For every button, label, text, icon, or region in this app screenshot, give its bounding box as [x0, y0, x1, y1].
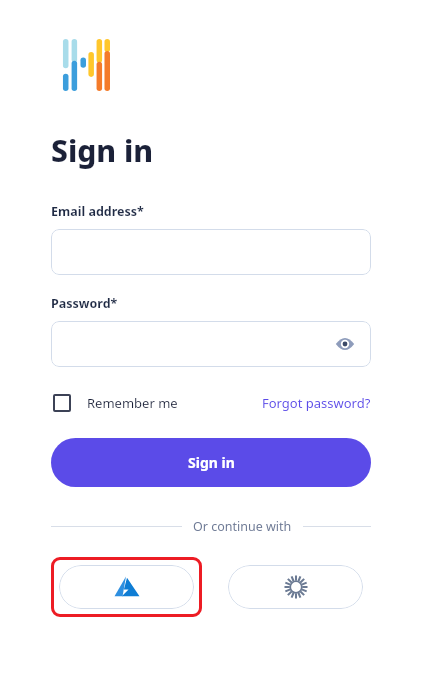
- staticText: Sign in: [188, 453, 235, 472]
- button[interactable]: Forgot password?: [262, 390, 371, 416]
- staticText: Forgot password?: [262, 394, 371, 412]
- button[interactable]: Sign in with Microsoft Azure: [59, 565, 194, 609]
- staticText: Sign in: [51, 130, 153, 171]
- button[interactable]: Sign in with SSO: [228, 565, 363, 609]
- button[interactable]: Show password: [51, 321, 371, 367]
- staticText: Email address*: [51, 203, 144, 220]
- staticText: Remember me: [87, 394, 178, 412]
- button[interactable]: [51, 229, 371, 275]
- staticText: Password*: [51, 295, 118, 312]
- button[interactable]: Show password: [334, 333, 356, 355]
- button[interactable]: Remember me: [51, 390, 180, 416]
- staticText: Or continue with: [193, 518, 292, 535]
- button[interactable]: Sign in: [51, 438, 371, 487]
